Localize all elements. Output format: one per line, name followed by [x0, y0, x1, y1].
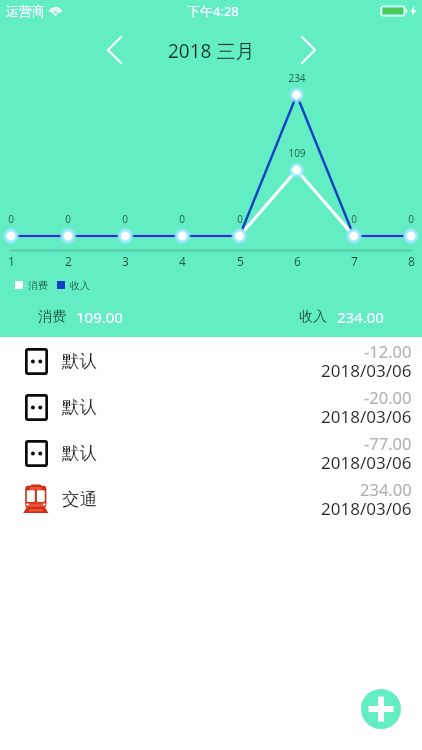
staticText: 109	[288, 146, 306, 160]
staticText: 2018/03/06	[321, 451, 412, 474]
staticText: 109.00	[76, 307, 123, 327]
staticText: 2018/03/06	[321, 405, 412, 428]
staticText: 5	[237, 253, 244, 269]
button[interactable]: 默认	[0, 338, 422, 384]
button[interactable]: 交通	[0, 476, 422, 522]
staticText: 收入	[70, 279, 90, 292]
staticText: 默认	[62, 350, 97, 372]
staticText: 2018/03/06	[321, 497, 412, 520]
staticText: 消费	[38, 308, 66, 326]
staticText: 0	[351, 212, 357, 226]
staticText: 收入	[299, 308, 327, 326]
staticText: 2	[65, 253, 72, 269]
staticText: 234.00	[360, 478, 412, 500]
button[interactable]: Add record	[361, 689, 401, 729]
staticText: 0	[8, 212, 14, 226]
staticText: -20.00	[364, 386, 412, 408]
staticText: 8	[408, 253, 415, 269]
button[interactable]: 默认	[0, 430, 422, 476]
staticText: 2018/03/06	[321, 359, 412, 382]
staticText: -12.00	[364, 340, 412, 362]
staticText: 默认	[62, 442, 97, 464]
staticText: 7	[351, 253, 358, 269]
staticText: 0	[237, 212, 243, 226]
staticText: 默认	[62, 396, 97, 418]
staticText: 运营商	[6, 3, 45, 19]
staticText: -77.00	[364, 432, 412, 454]
staticText: 1	[8, 253, 15, 269]
staticText: 234.00	[337, 307, 384, 327]
staticText: 0	[179, 212, 185, 226]
staticText: 234	[288, 71, 306, 85]
button[interactable]: Next month	[288, 30, 328, 70]
staticText: 0	[122, 212, 128, 226]
staticText: 0	[65, 212, 71, 226]
staticText: 交通	[62, 488, 97, 510]
staticText: 6	[294, 253, 301, 269]
staticText: 4	[179, 253, 186, 269]
staticText: 下午4:28	[187, 2, 239, 20]
button[interactable]: 默认	[0, 384, 422, 430]
staticText: 3	[122, 253, 129, 269]
button[interactable]: Previous month	[94, 30, 134, 70]
staticText: 消费	[28, 279, 48, 292]
staticText: 0	[408, 212, 414, 226]
staticText: 2018 三月	[168, 38, 255, 64]
